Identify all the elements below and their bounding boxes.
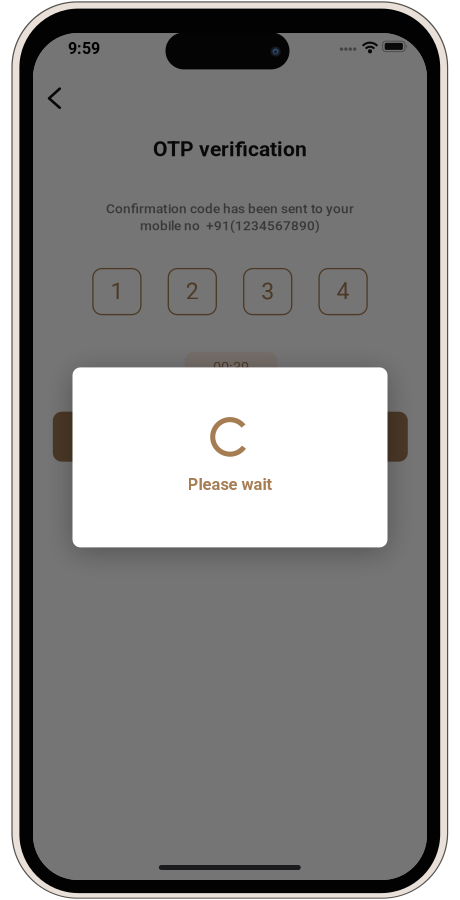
staticText: OTP verification (153, 137, 307, 161)
button[interactable]: 4 (319, 269, 367, 315)
staticText: Confirmation code has been sent to your (106, 200, 354, 216)
button[interactable]: 2 (168, 269, 216, 315)
staticText: 3 (261, 278, 274, 305)
button[interactable]: Verify (53, 412, 408, 462)
staticText: Verify (206, 426, 254, 447)
staticText: Please wait (187, 475, 272, 494)
staticText: 2 (186, 278, 199, 305)
button[interactable]: 1 (93, 269, 141, 315)
button[interactable]: 3 (244, 269, 292, 315)
button[interactable]: Back (32, 76, 76, 120)
staticText: mobile no +91(1234567890) (140, 217, 320, 233)
staticText: 9:59 (68, 39, 100, 58)
staticText: 00:39 (213, 359, 249, 376)
staticText: 1 (110, 278, 123, 305)
staticText: 4 (337, 278, 350, 305)
